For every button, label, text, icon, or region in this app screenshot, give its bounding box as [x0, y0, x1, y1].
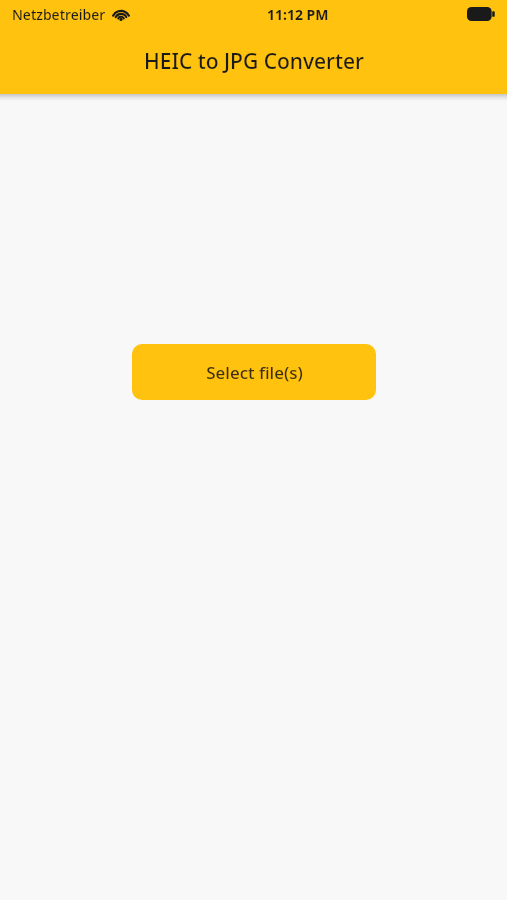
staticText: Netzbetreiber — [12, 5, 106, 24]
other: Battery full — [467, 7, 495, 21]
button[interactable]: Select file(s) — [132, 344, 376, 400]
other: Wi-Fi signal — [112, 7, 130, 21]
staticText: Select file(s) — [206, 361, 303, 384]
staticText: 11:12 PM — [267, 5, 329, 24]
staticText: HEIC to JPG Converter — [144, 47, 364, 76]
